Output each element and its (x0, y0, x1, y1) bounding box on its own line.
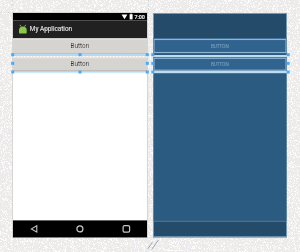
button[interactable]: Layout editor preview (0, 0, 300, 252)
